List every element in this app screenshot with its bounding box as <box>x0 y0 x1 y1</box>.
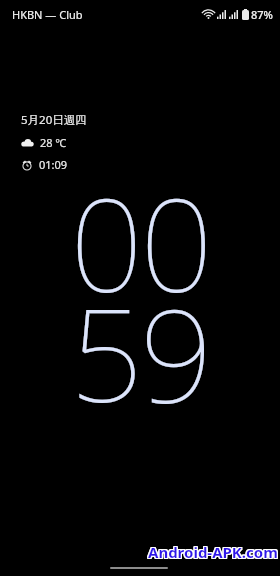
staticText: 01:09 <box>39 157 68 172</box>
staticText: Android-APK.com <box>149 541 279 561</box>
other: Weather <box>21 138 34 148</box>
staticText: 59 <box>0 265 280 439</box>
staticText: Android-APK.com <box>149 542 279 562</box>
button[interactable]: 00 <box>0 0 280 576</box>
staticText: 00 <box>0 155 280 329</box>
staticText: Android-APK.com <box>147 542 277 562</box>
staticText: 87% <box>251 7 273 22</box>
button[interactable]: Alarm <box>21 157 68 172</box>
button[interactable]: Weather <box>21 135 67 150</box>
staticText: Android-APK.com <box>147 541 277 561</box>
staticText: Android-APK.com <box>148 541 278 561</box>
staticText: 5月20日週四 <box>21 112 87 128</box>
other: Alarm <box>21 159 33 171</box>
staticText: Android-APK.com <box>149 543 279 563</box>
staticText: Android-APK.com <box>148 542 278 562</box>
staticText: HKBN — Club <box>12 7 83 22</box>
staticText: 28 ℃ <box>40 135 67 150</box>
staticText: Android-APK.com <box>148 543 278 563</box>
staticText: Android-APK.com <box>147 543 277 563</box>
